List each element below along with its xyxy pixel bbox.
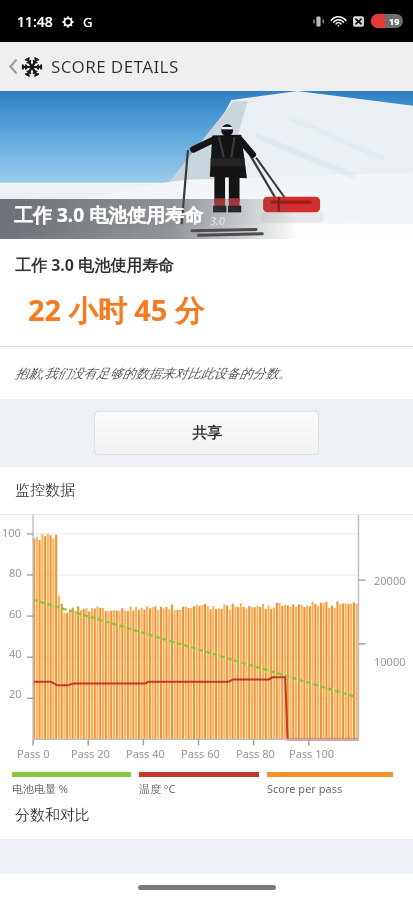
staticText: 20000 bbox=[374, 573, 406, 588]
staticText: Pass 40 bbox=[126, 746, 165, 761]
staticText: Pass 80 bbox=[236, 746, 275, 761]
staticText: 10000 bbox=[374, 654, 406, 669]
staticText: 60 bbox=[9, 606, 22, 621]
staticText: 监控数据 bbox=[15, 481, 75, 500]
staticText: 电池电量 % bbox=[12, 781, 69, 796]
staticText: 100 bbox=[2, 525, 21, 540]
staticText: G bbox=[83, 13, 93, 31]
staticText: Pass 20 bbox=[71, 746, 110, 761]
staticText: 工作 3.0 电池使用寿命 bbox=[15, 254, 175, 276]
staticText: 11:48 bbox=[17, 12, 53, 31]
staticText: 40 bbox=[9, 646, 22, 661]
staticText: Pass 100 bbox=[289, 746, 335, 761]
staticText: SCORE DETAILS bbox=[51, 55, 179, 78]
staticText: 3.0 bbox=[210, 213, 225, 228]
staticText: 分数和对比 bbox=[15, 806, 90, 825]
staticText: 温度 °C bbox=[139, 781, 176, 796]
staticText: Pass 0 bbox=[17, 746, 50, 761]
staticText: 共享 bbox=[192, 424, 222, 443]
staticText: 19 bbox=[389, 15, 400, 27]
staticText: 20 bbox=[9, 686, 22, 701]
staticText: 抱歉,我们没有足够的数据来对比此设备的分数。 bbox=[15, 364, 292, 382]
staticText: Score per pass bbox=[267, 781, 343, 796]
staticText: 80 bbox=[9, 565, 22, 580]
staticText: 22 小时 45 分 bbox=[28, 290, 204, 330]
staticText: 工作 3.0 电池使用寿命 bbox=[14, 202, 203, 228]
button[interactable]: 共享 bbox=[94, 411, 319, 455]
staticText: Pass 60 bbox=[181, 746, 220, 761]
button[interactable]: Back bbox=[0, 49, 187, 84]
